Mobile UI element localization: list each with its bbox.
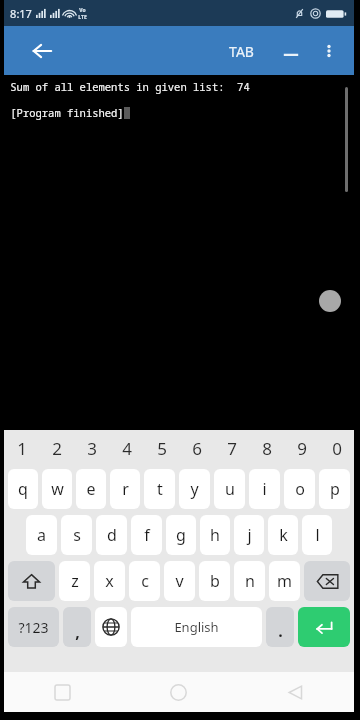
staticText: 1 [17, 437, 27, 460]
button[interactable]: TAB [223, 36, 260, 67]
button[interactable]: English [131, 607, 262, 647]
staticText: d [107, 524, 117, 546]
button[interactable]: h [200, 515, 230, 555]
staticText: f [144, 524, 150, 546]
staticText: 9 [297, 437, 307, 460]
button[interactable]: Home [120, 672, 237, 712]
button[interactable]: 0 [319, 430, 354, 466]
button[interactable]: Minimize [274, 34, 308, 68]
staticText: z [71, 570, 79, 592]
button[interactable]: x [94, 561, 125, 601]
button[interactable]: w [42, 469, 72, 509]
button[interactable]: j [234, 515, 264, 555]
button[interactable]: u [214, 469, 245, 509]
button[interactable]: Back [24, 33, 60, 69]
button[interactable]: . [266, 607, 294, 647]
button[interactable]: s [61, 515, 92, 555]
button[interactable]: q [8, 469, 38, 509]
staticText: LTE [78, 14, 87, 21]
staticText: . [278, 620, 283, 642]
staticText: n [245, 570, 255, 592]
staticText: m [277, 570, 292, 592]
staticText: r [122, 478, 129, 500]
staticText: k [279, 524, 288, 546]
button[interactable]: 2 [39, 430, 74, 466]
staticText: e [86, 478, 96, 500]
button[interactable]: i [249, 469, 280, 509]
button[interactable]: 6 [179, 430, 214, 466]
staticText: ?123 [18, 618, 49, 637]
button[interactable]: p [319, 469, 350, 509]
button[interactable]: y [179, 469, 210, 509]
staticText: 4 [122, 437, 132, 460]
staticText: x [105, 570, 114, 592]
button[interactable]: Resize handle [319, 290, 341, 312]
button[interactable]: 9 [284, 430, 319, 466]
staticText: h [210, 524, 220, 546]
button[interactable]: Backspace [304, 561, 350, 601]
staticText: 8 [262, 437, 272, 460]
button[interactable]: b [199, 561, 230, 601]
button[interactable]: 8 [249, 430, 284, 466]
button[interactable]: d [96, 515, 127, 555]
button[interactable]: f [131, 515, 162, 555]
button[interactable]: More options [312, 34, 346, 68]
button[interactable]: o [284, 469, 315, 509]
staticText: q [18, 478, 28, 500]
staticText: English [174, 618, 219, 636]
staticText: , [75, 621, 80, 643]
button[interactable]: g [166, 515, 196, 555]
button[interactable]: c [129, 561, 160, 601]
staticText: 0 [332, 437, 342, 460]
staticText: u [225, 478, 235, 500]
staticText: Sum of all elements in given list: 74 [10, 80, 250, 94]
button[interactable]: Recents [4, 672, 120, 712]
button[interactable]: n [234, 561, 265, 601]
button[interactable]: e [76, 469, 106, 509]
button[interactable]: 4 [109, 430, 144, 466]
staticText: p [330, 478, 340, 500]
button[interactable]: a [26, 515, 57, 555]
staticText: 5 [157, 437, 167, 460]
staticText: c [141, 570, 149, 592]
staticText: g [176, 524, 186, 546]
staticText: s [73, 524, 81, 546]
button[interactable]: z [59, 561, 90, 601]
button[interactable]: v [164, 561, 195, 601]
staticText: t [157, 478, 163, 500]
staticText: [Program finished] [10, 106, 124, 120]
button[interactable]: l [302, 515, 332, 555]
staticText: 2 [52, 437, 62, 460]
staticText: v [175, 570, 184, 592]
button[interactable]: , [63, 607, 91, 647]
staticText: y [190, 478, 199, 500]
staticText: b [210, 570, 220, 592]
button[interactable]: k [268, 515, 298, 555]
button[interactable]: 3 [74, 430, 109, 466]
button[interactable]: m [269, 561, 300, 601]
staticText: TAB [229, 42, 254, 61]
button[interactable]: 7 [214, 430, 249, 466]
staticText: 3 [87, 437, 97, 460]
staticText: 8:17 [10, 6, 32, 21]
staticText: j [247, 524, 252, 546]
staticText: i [262, 478, 267, 500]
button[interactable]: 1 [4, 430, 39, 466]
staticText: 7 [227, 437, 237, 460]
button[interactable]: r [110, 469, 140, 509]
staticText: a [37, 524, 46, 546]
staticText: o [295, 478, 305, 500]
button[interactable]: Back [237, 672, 354, 712]
staticText: 6 [192, 437, 202, 460]
staticText: Vo [79, 7, 86, 14]
staticText: w [51, 478, 64, 500]
button[interactable]: t [144, 469, 175, 509]
button[interactable]: Change language [95, 607, 127, 647]
button[interactable]: 5 [144, 430, 179, 466]
button[interactable]: Shift [8, 561, 55, 601]
staticText: l [315, 524, 320, 546]
button[interactable]: ?123 [8, 607, 59, 647]
button[interactable]: Enter [298, 607, 350, 647]
